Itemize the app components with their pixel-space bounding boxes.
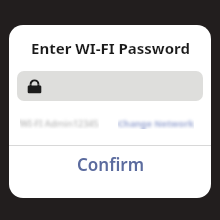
other: Secured password field <box>26 78 43 95</box>
staticText: Change Network <box>118 117 194 129</box>
staticText: Enter WI-FI Password <box>31 38 190 58</box>
button[interactable]: Confirm <box>9 146 211 182</box>
button[interactable]: Change Network <box>118 117 194 129</box>
staticText: Confirm <box>77 153 144 176</box>
staticText: WI-FI Admin12345 <box>20 117 99 129</box>
button[interactable]: Secured password field <box>17 71 203 101</box>
